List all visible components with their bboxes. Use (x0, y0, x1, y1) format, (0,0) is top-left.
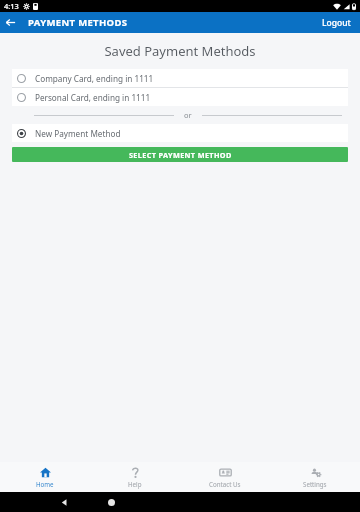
staticText: Settings (303, 480, 327, 488)
staticText: PAYMENT METHODS (28, 16, 128, 29)
button[interactable]: New Payment Method (12, 124, 348, 142)
staticText: Contact Us (209, 480, 241, 488)
staticText: or (184, 110, 192, 120)
button[interactable]: Back (0, 12, 21, 33)
staticText: New Payment Method (35, 128, 121, 139)
button[interactable]: Settings (270, 462, 360, 492)
button[interactable]: Logout (313, 13, 360, 33)
staticText: 4:13 (4, 1, 19, 11)
button[interactable]: Company Card, ending in 1111 (12, 69, 348, 87)
staticText: Help (128, 480, 142, 488)
button[interactable]: SELECT PAYMENT METHOD (12, 147, 348, 162)
staticText: Home (36, 480, 54, 488)
staticText: SELECT PAYMENT METHOD (129, 150, 232, 160)
button[interactable]: Help (90, 462, 180, 492)
button[interactable]: Contact Us (180, 462, 270, 492)
staticText: Logout (322, 17, 351, 29)
staticText: Saved Payment Methods (0, 42, 360, 60)
button[interactable]: Personal Card, ending in 1111 (12, 88, 348, 106)
staticText: Company Card, ending in 1111 (35, 73, 154, 84)
button[interactable]: Home (0, 462, 90, 492)
staticText: Personal Card, ending in 1111 (35, 92, 151, 103)
